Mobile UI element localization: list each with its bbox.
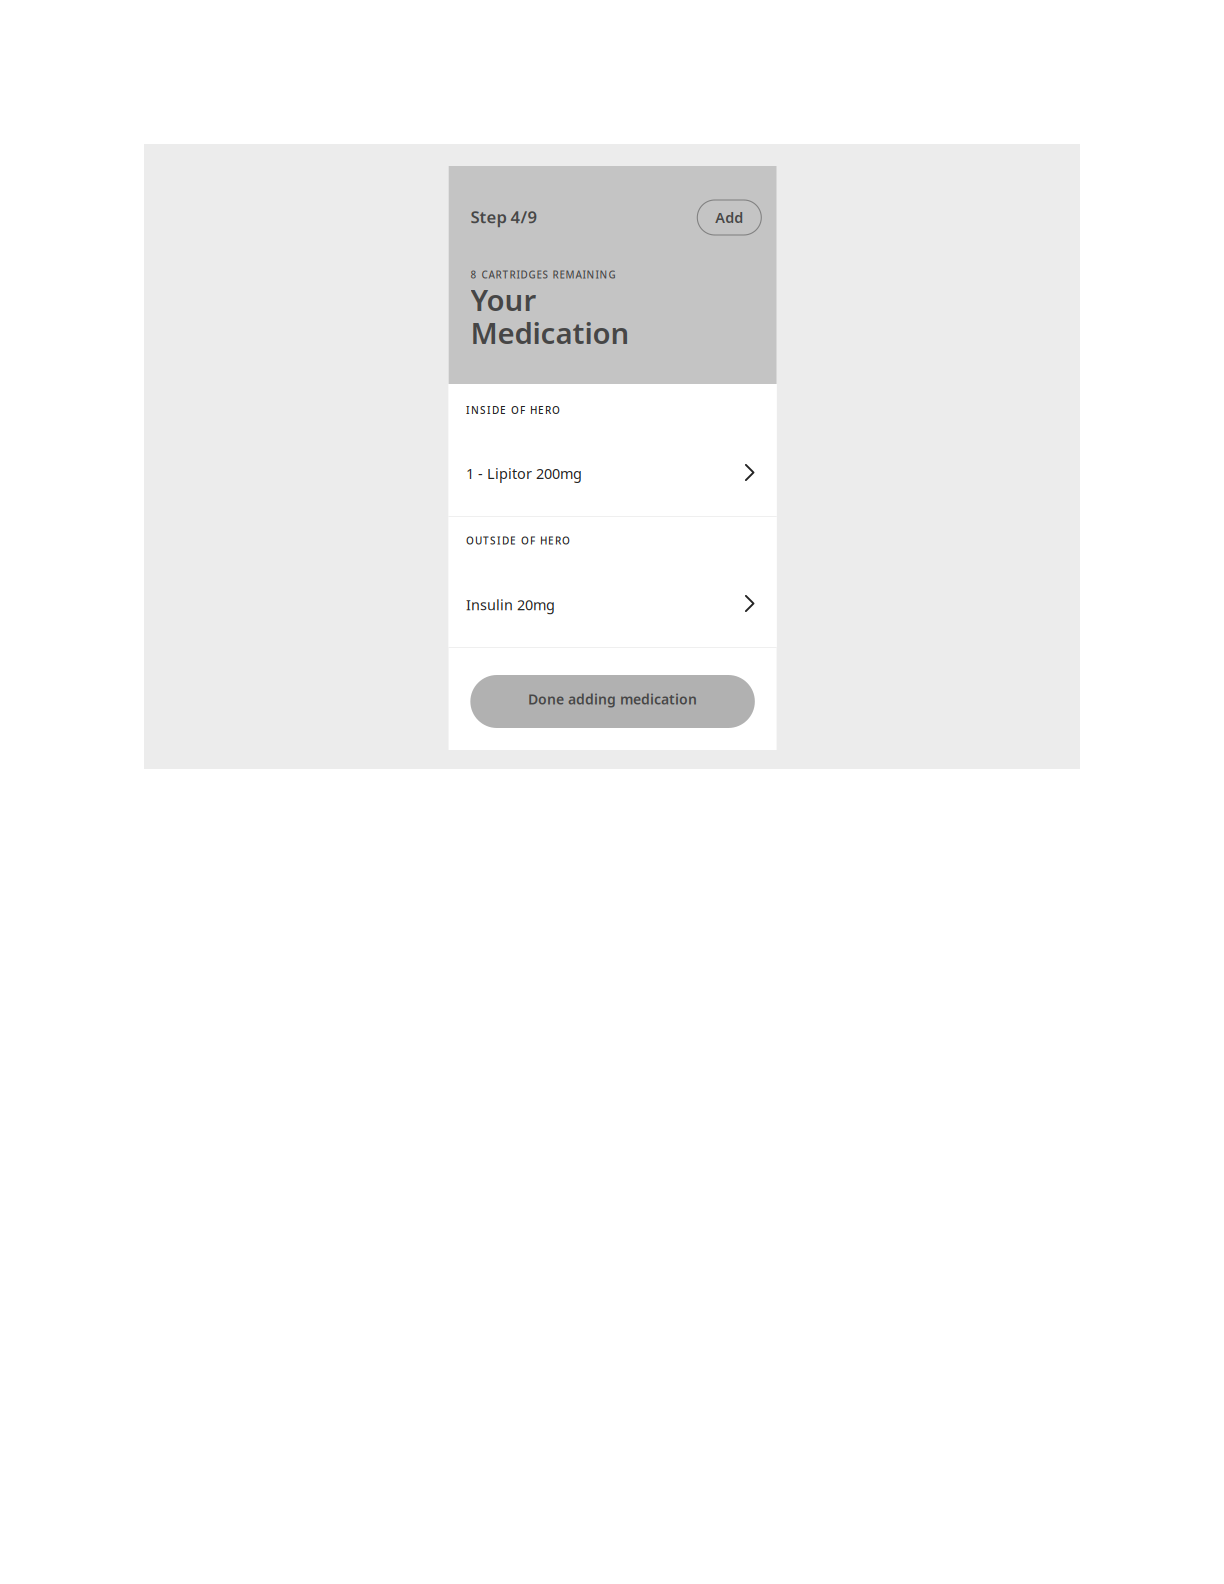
- staticText: Medication: [471, 313, 630, 353]
- staticText: O U T S I D E O F H E R O: [466, 534, 570, 547]
- staticText: 1 - Lipitor 200mg: [466, 464, 582, 483]
- button[interactable]: Add: [697, 200, 761, 235]
- button[interactable]: I N S I D E O F H E R O: [449, 384, 777, 516]
- staticText: I N S I D E O F H E R O: [466, 403, 560, 417]
- button[interactable]: O U T S I D E O F H E R O: [449, 517, 777, 647]
- staticText: 8 C A R T R I D G E S R E M A I N I N G: [471, 268, 616, 281]
- staticText: Add: [715, 208, 743, 227]
- staticText: Your: [471, 280, 537, 320]
- staticText: Insulin 20mg: [466, 595, 555, 614]
- staticText: Step 4/9: [471, 205, 538, 228]
- button[interactable]: Done adding medication: [470, 675, 755, 728]
- staticText: Done adding medication: [528, 689, 697, 709]
